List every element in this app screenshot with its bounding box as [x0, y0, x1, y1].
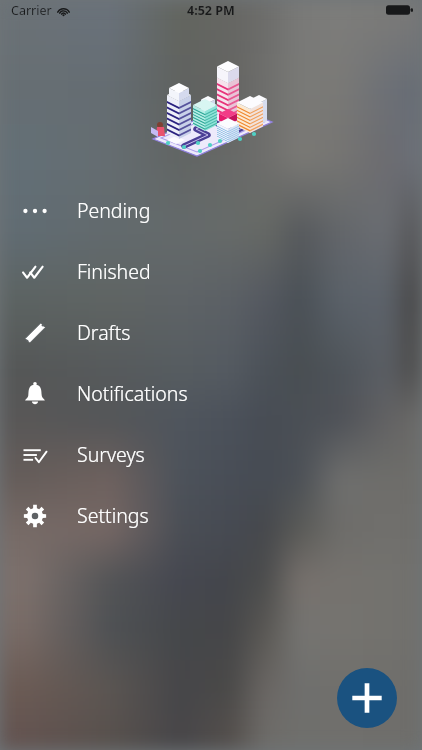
button[interactable]: Settings	[0, 485, 422, 546]
staticText: Carrier	[11, 2, 52, 19]
button[interactable]: Notifications	[0, 363, 422, 424]
staticText: Surveys	[77, 441, 145, 468]
staticText: Drafts	[77, 319, 131, 346]
staticText: Finished	[77, 258, 151, 285]
button[interactable]: Finished	[0, 241, 422, 302]
staticText: 4:52 PM	[187, 2, 235, 19]
staticText: Settings	[77, 502, 149, 529]
staticText: Notifications	[77, 380, 188, 407]
button[interactable]: Drafts	[0, 302, 422, 363]
button[interactable]: Surveys	[0, 424, 422, 485]
staticText: Pending	[77, 197, 151, 224]
button[interactable]: Pending	[0, 180, 422, 241]
button[interactable]: Add new	[337, 668, 397, 728]
